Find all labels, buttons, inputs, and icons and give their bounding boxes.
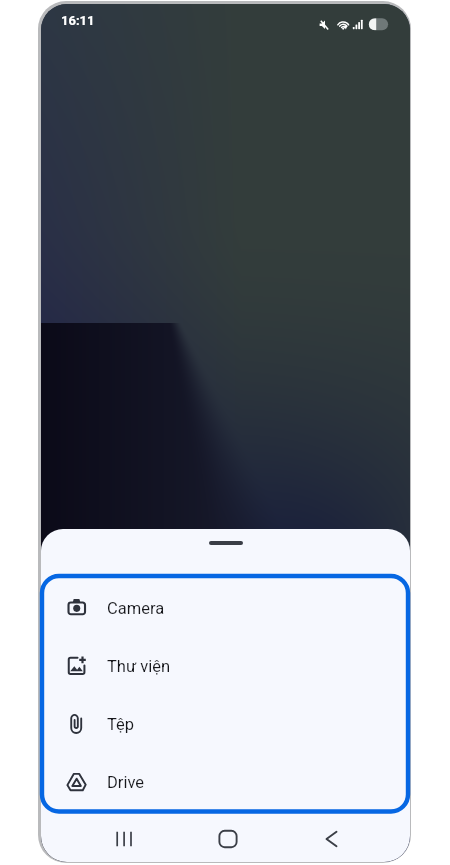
staticText: Tệp [107, 715, 135, 734]
staticText: Thư viện [107, 657, 171, 676]
button[interactable]: Tệp [41, 695, 410, 753]
button[interactable]: Home [208, 819, 248, 859]
staticText: Drive [107, 773, 145, 792]
staticText: 16:11 [61, 13, 95, 28]
button[interactable]: Drive [41, 753, 410, 811]
button[interactable]: Recent apps [104, 819, 144, 859]
button[interactable]: Camera [41, 579, 410, 637]
staticText: Camera [107, 599, 165, 618]
button[interactable]: Back [311, 819, 351, 859]
button[interactable]: Thư viện [41, 637, 410, 695]
